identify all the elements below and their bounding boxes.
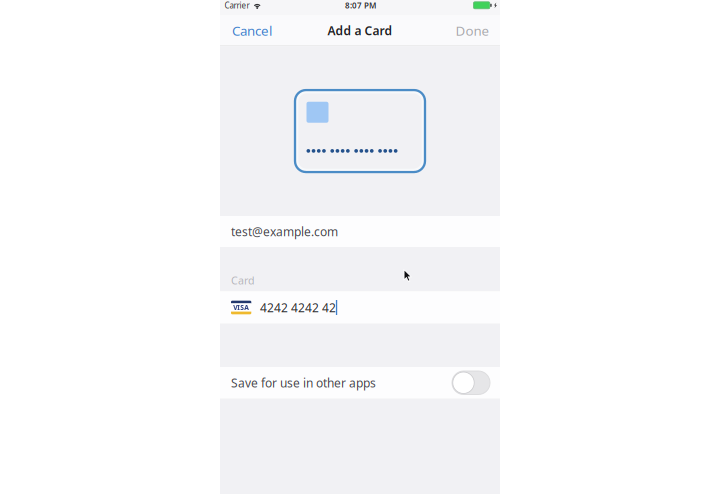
staticText: test@example.com <box>231 223 338 239</box>
staticText: Add a Card <box>327 22 392 38</box>
staticText: Card <box>231 273 255 287</box>
staticText: Save for use in other apps <box>231 375 376 391</box>
button[interactable]: Done <box>445 15 499 45</box>
staticText: Carrier <box>225 0 250 11</box>
button[interactable]: Save for use in other apps <box>452 371 490 394</box>
staticText: Cancel <box>232 22 272 39</box>
staticText: Done <box>455 22 489 39</box>
button[interactable]: Cancel <box>222 15 282 45</box>
staticText: 8:07 PM <box>345 0 376 11</box>
staticText: 4242 4242 42 <box>260 299 336 315</box>
staticText: VISA <box>233 303 249 312</box>
